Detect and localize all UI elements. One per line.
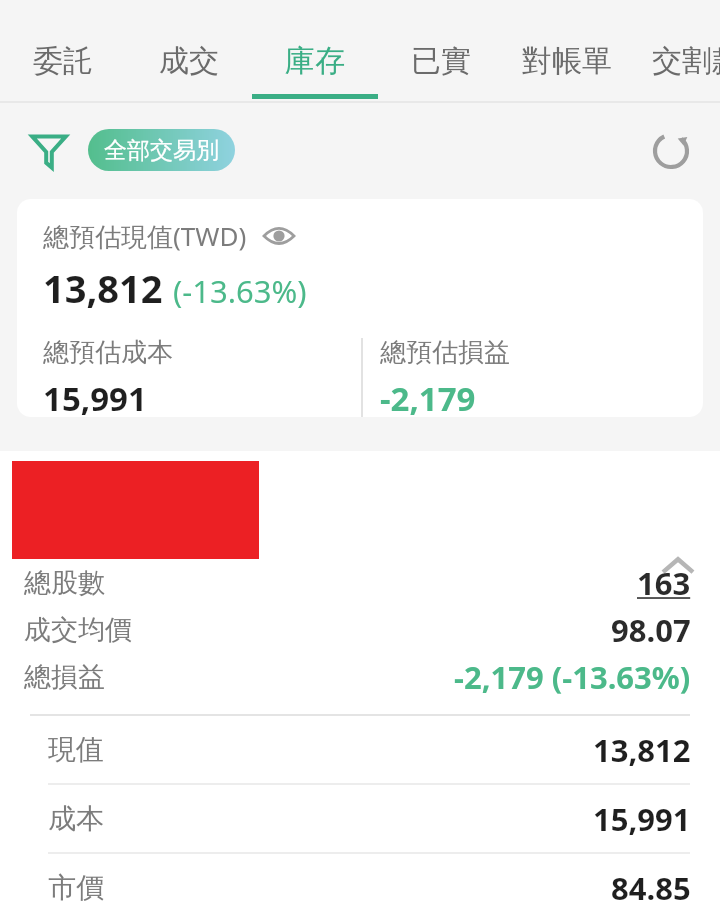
staticText: 已實	[411, 42, 471, 80]
staticText: 委託	[33, 42, 93, 80]
staticText: 98.07	[611, 609, 691, 651]
button[interactable]: 庫存	[252, 0, 378, 103]
staticText: 15,991	[43, 376, 147, 417]
button[interactable]: 總預估現值(TWD)	[17, 199, 703, 417]
staticText: 84.85	[611, 867, 691, 909]
button[interactable]: Collapse	[651, 539, 705, 593]
button[interactable]: Refresh	[645, 125, 697, 177]
staticText: 成交均價	[24, 613, 132, 647]
staticText: 15,991	[593, 798, 691, 840]
button[interactable]: 現值	[0, 716, 720, 783]
button[interactable]: Filter	[23, 124, 75, 176]
staticText: 13,812	[593, 729, 691, 771]
button[interactable]: Toggle visibility	[261, 218, 297, 254]
staticText: 總損益	[24, 660, 105, 694]
staticText: (-13.63%)	[173, 270, 307, 312]
staticText: 163	[637, 562, 691, 604]
button[interactable]: 成本	[0, 785, 720, 852]
staticText: 總預估損益	[380, 336, 510, 369]
staticText: 成交	[159, 42, 219, 80]
staticText: 總股數	[24, 566, 105, 600]
button[interactable]: 委託	[0, 0, 126, 103]
staticText: 對帳單	[522, 42, 612, 80]
staticText: -2,179	[380, 376, 476, 417]
button[interactable]: 成交	[126, 0, 252, 103]
staticText: 成本	[48, 801, 104, 836]
staticText: 市價	[48, 870, 104, 905]
button[interactable]: 全部交易別	[88, 129, 235, 171]
button[interactable]: 已實	[378, 0, 504, 103]
button[interactable]: 成交均價	[0, 606, 720, 653]
button[interactable]: 總股數	[0, 559, 720, 606]
staticText: 全部交易別	[104, 136, 219, 165]
button[interactable]: 對帳單	[504, 0, 630, 103]
button[interactable]: 交割款	[634, 0, 720, 103]
staticText: 庫存	[285, 42, 345, 80]
button[interactable]: 市價	[0, 854, 720, 919]
staticText: 現值	[48, 732, 104, 767]
staticText: -2,179 (-13.63%)	[454, 656, 691, 698]
button[interactable]: 總損益	[0, 653, 720, 700]
staticText: 總預估成本	[43, 336, 173, 369]
staticText: 13,812	[43, 262, 163, 314]
staticText: 總預估現值(TWD)	[43, 218, 247, 254]
staticText: 交割款	[652, 42, 720, 80]
